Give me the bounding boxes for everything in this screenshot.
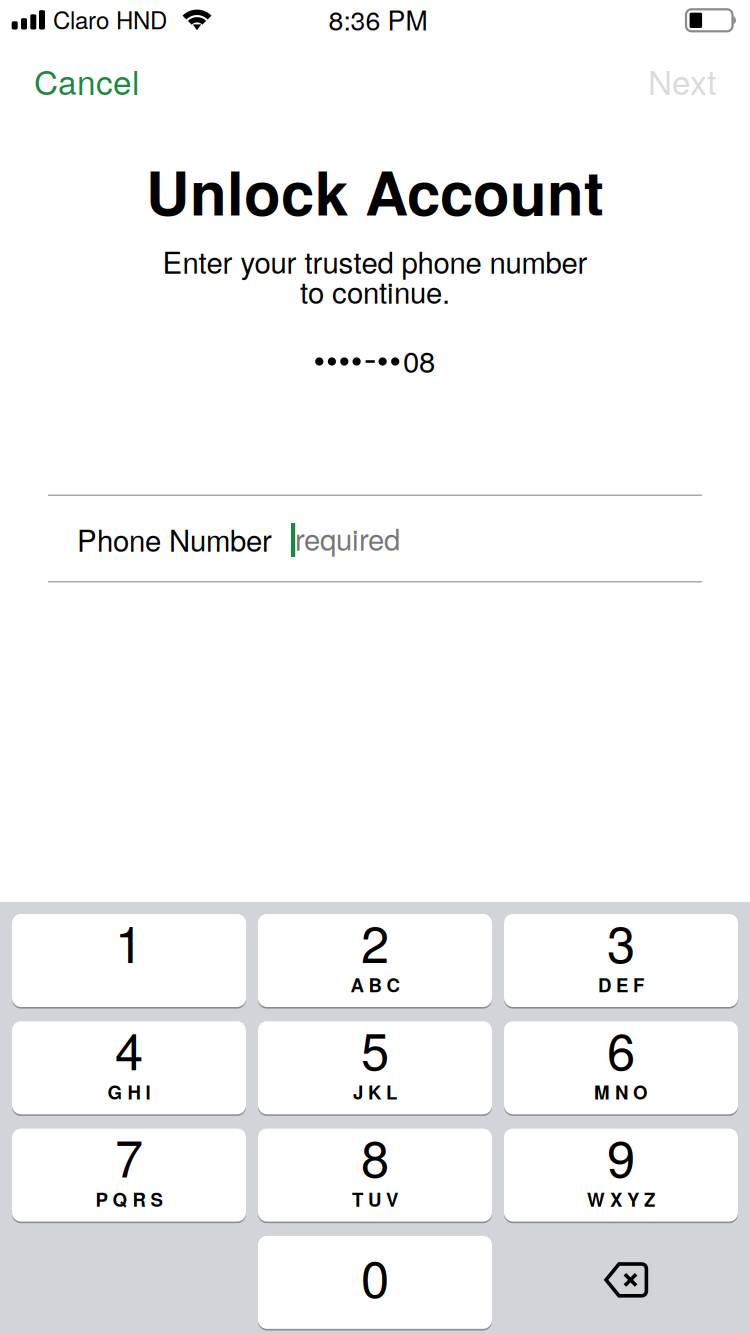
staticText: G H I	[107, 1078, 150, 1105]
staticText: to continue.	[300, 270, 450, 312]
staticText: 2	[361, 905, 389, 977]
staticText: Next	[648, 57, 716, 104]
staticText: required	[295, 517, 400, 559]
staticText: 3	[607, 905, 635, 977]
button[interactable]: 9	[504, 1129, 738, 1222]
button[interactable]: 7	[12, 1129, 246, 1222]
staticText: Claro HND	[53, 2, 167, 36]
staticText: M N O	[594, 1078, 648, 1105]
button[interactable]: Next	[596, 52, 750, 108]
button[interactable]: 6	[504, 1021, 738, 1114]
staticText: Phone Number	[77, 518, 272, 560]
button[interactable]: 4	[12, 1021, 246, 1114]
staticText: 6	[607, 1012, 635, 1085]
button[interactable]: Delete	[504, 1236, 738, 1329]
staticText: Enter your trusted phone number	[162, 240, 587, 282]
staticText: J K L	[353, 1078, 397, 1105]
staticText: 9	[607, 1119, 635, 1192]
staticText: D E F	[598, 971, 644, 998]
button[interactable]: 0	[258, 1236, 492, 1329]
staticText: 7	[115, 1119, 143, 1192]
button[interactable]: 2	[258, 914, 492, 1007]
staticText: 8:36 PM	[328, 0, 427, 38]
staticText: 1	[115, 905, 143, 977]
button[interactable]: 3	[504, 914, 738, 1007]
staticText: 8	[361, 1119, 389, 1192]
staticText: 5	[361, 1012, 389, 1085]
button[interactable]: 5	[258, 1021, 492, 1114]
staticText: T U V	[352, 1186, 398, 1212]
staticText: P Q R S	[95, 1186, 162, 1212]
staticText: Unlock Account	[146, 148, 604, 234]
staticText: 4	[115, 1012, 143, 1085]
button[interactable]: 8	[258, 1129, 492, 1222]
button[interactable]: Phone Number	[48, 496, 702, 581]
staticText: W X Y Z	[587, 1186, 655, 1212]
staticText: 0	[361, 1240, 389, 1312]
button[interactable]: Cancel	[0, 52, 166, 108]
staticText: 08	[403, 339, 435, 381]
staticText: Cancel	[34, 57, 139, 104]
staticText: A B C	[350, 971, 399, 998]
button[interactable]: 1	[12, 914, 246, 1007]
